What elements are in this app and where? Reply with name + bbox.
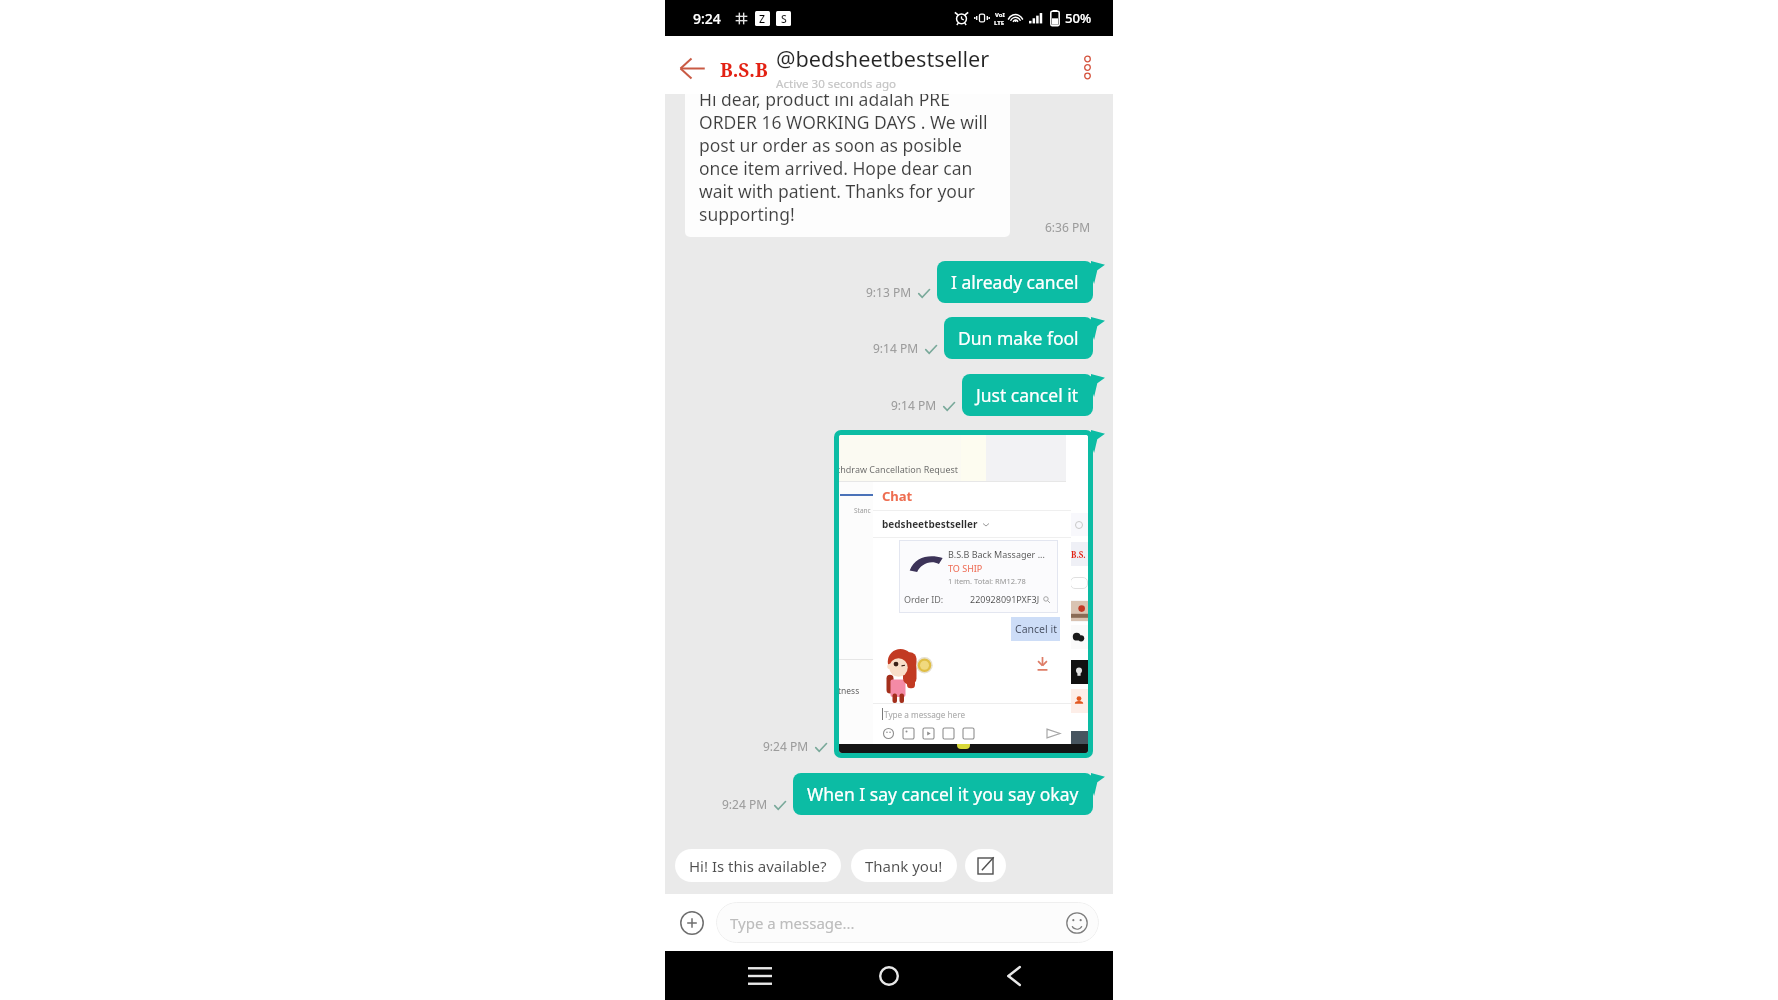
staticText: S: [781, 12, 787, 26]
staticText: tness: [839, 685, 860, 697]
staticText: 6:36 PM: [1045, 219, 1091, 235]
staticText: bedsheetbestseller: [882, 517, 978, 531]
staticText: 9:24 PM: [763, 738, 809, 754]
button[interactable]: Just cancel it: [962, 374, 1093, 416]
staticText: 50%: [1065, 9, 1092, 27]
staticText: Hi dear, product ini adalah PRE ORDER 16…: [699, 94, 997, 226]
staticText: I already cancel: [951, 270, 1079, 294]
button[interactable]: Back: [990, 952, 1038, 1000]
button[interactable]: @bedsheetbestseller: [776, 44, 990, 92]
button[interactable]: Hi! Is this available?: [675, 849, 841, 882]
staticText: B.S.B Back Massager ...: [948, 548, 1045, 560]
staticText: thdraw Cancellation Request: [839, 463, 959, 475]
button[interactable]: Dun make fool: [944, 317, 1093, 359]
button[interactable]: I already cancel: [937, 261, 1093, 303]
button[interactable]: More options: [1069, 49, 1105, 85]
button[interactable]: Home: [865, 952, 913, 1000]
staticText: 9:24 PM: [722, 796, 768, 812]
button[interactable]: Back: [673, 49, 711, 87]
button[interactable]: Add attachment: [675, 906, 709, 940]
staticText: @bedsheetbestseller: [776, 44, 990, 74]
staticText: Just cancel it: [976, 383, 1079, 407]
button[interactable]: thdraw Cancellation Request: [834, 430, 1093, 758]
staticText: Thank you!: [865, 856, 943, 876]
button[interactable]: Recent apps: [736, 952, 784, 1000]
button[interactable]: Thank you!: [851, 849, 957, 882]
staticText: Hi! Is this available?: [689, 856, 827, 876]
staticText: Order ID:: [904, 593, 944, 605]
staticText: 9:24: [693, 9, 721, 28]
staticText: TO SHIP: [948, 562, 983, 574]
staticText: 9:13 PM: [866, 284, 912, 300]
staticText: Type a message...: [730, 913, 855, 933]
staticText: VoI: [995, 11, 1005, 19]
button[interactable]: Type a message...: [716, 902, 1099, 943]
staticText: 9:14 PM: [873, 340, 919, 356]
staticText: LTE: [994, 19, 1005, 25]
button[interactable]: Hi dear, product ini adalah PRE ORDER 16…: [685, 94, 1010, 237]
staticText: Chat: [882, 487, 913, 505]
staticText: B.S.: [1071, 549, 1086, 560]
staticText: When I say cancel it you say okay: [807, 782, 1079, 806]
button[interactable]: When I say cancel it you say okay: [793, 773, 1093, 815]
staticText: Cancel it: [1015, 622, 1057, 636]
staticText: Active 30 seconds ago: [776, 76, 897, 92]
staticText: Type a message here: [884, 709, 966, 720]
staticText: 1 item. Total: RM12.78: [948, 576, 1026, 586]
staticText: 9:14 PM: [891, 397, 937, 413]
button[interactable]: Emoji: [1064, 910, 1090, 936]
staticText: Dun make fool: [958, 326, 1079, 350]
staticText: Z: [759, 12, 766, 26]
button[interactable]: Edit quick reply: [965, 849, 1006, 882]
staticText: Stanc: [854, 506, 871, 515]
staticText: 220928091PXF3J: [970, 593, 1040, 605]
staticText: B.S.B: [720, 57, 768, 83]
